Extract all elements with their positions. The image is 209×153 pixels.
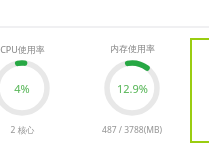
staticText: 内存使用率 <box>110 43 155 54</box>
staticText: 2 核心 <box>10 124 35 136</box>
button[interactable]: CPU使用率 <box>0 34 82 146</box>
staticText: 12.9% <box>117 81 148 96</box>
staticText: CPU使用率 <box>0 43 45 55</box>
staticText: 487 / 3788(MB) <box>102 124 162 136</box>
staticText: 4% <box>14 81 30 96</box>
button[interactable]: Highlighted panel <box>0 0 209 153</box>
button[interactable]: 内存使用率 <box>72 34 192 146</box>
